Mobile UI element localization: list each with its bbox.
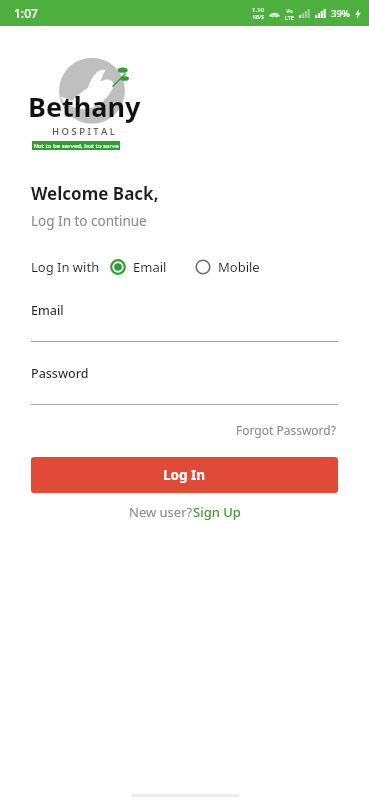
button[interactable]: Email [31,302,338,342]
button[interactable]: Sign Up [193,503,241,521]
button[interactable]: Password [31,365,338,405]
staticText: H O S P I T A L [52,125,115,138]
staticText: 39% [331,7,350,20]
staticText: LTE [285,14,294,21]
staticText: Vo [286,7,293,14]
staticText: Bethany [28,88,141,125]
staticText: Email [133,258,167,276]
staticText: Log In to continue [31,212,147,230]
staticText: Forgot Password? [236,422,336,438]
staticText: Password [31,365,89,382]
staticText: New user? [129,503,193,521]
button[interactable]: Log In [31,457,338,493]
staticText: Welcome Back, [31,182,159,205]
staticText: Not to be served, but to serve [33,142,119,150]
staticText: Email [31,302,64,319]
button[interactable]: Forgot Password? [234,419,338,441]
staticText: Sign Up [193,503,241,521]
button[interactable]: Email [110,256,167,278]
staticText: Log In [163,466,206,484]
staticText: 1:07 [14,5,38,21]
staticText: Log In with [31,258,100,276]
staticText: KB/S [253,14,264,21]
staticText: Mobile [218,258,260,276]
staticText: 1.10 [252,6,264,14]
button[interactable]: Mobile [195,256,260,278]
